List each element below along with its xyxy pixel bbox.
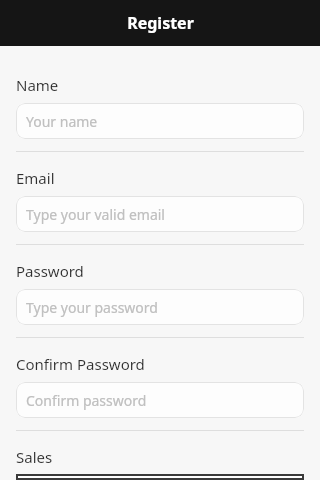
staticText: Your name: [26, 112, 98, 131]
staticText: Type your valid email: [26, 205, 165, 224]
staticText: Confirm password: [26, 391, 147, 410]
button[interactable]: [16, 474, 304, 480]
staticText: Confirm Password: [16, 354, 145, 374]
staticText: Sales: [16, 447, 53, 467]
button[interactable]: Type your password: [16, 289, 304, 325]
staticText: Email: [16, 168, 55, 188]
staticText: Type your password: [26, 298, 158, 317]
staticText: Password: [16, 261, 84, 281]
button[interactable]: Type your valid email: [16, 196, 304, 232]
button[interactable]: Confirm password: [16, 382, 304, 418]
staticText: Name: [16, 75, 59, 95]
button[interactable]: Your name: [16, 103, 304, 139]
staticText: Register: [127, 12, 194, 34]
